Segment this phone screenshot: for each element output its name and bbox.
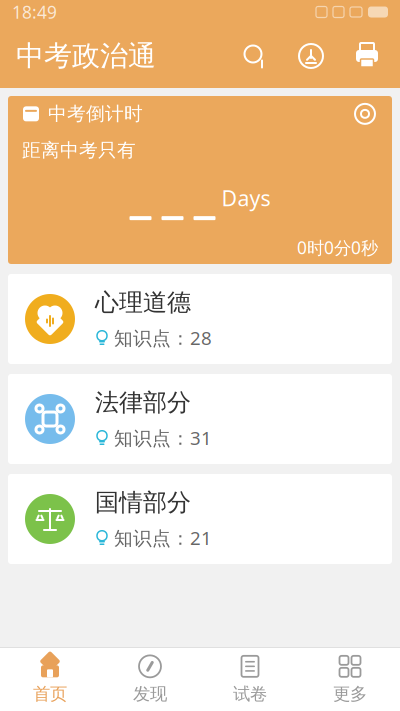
staticText: 法律部分 <box>95 388 191 417</box>
button[interactable]: 发现 <box>100 647 200 711</box>
button[interactable]: 心理道德 <box>8 274 392 364</box>
staticText: 试卷 <box>233 683 267 705</box>
staticText: 更多 <box>333 683 367 705</box>
staticText: Days <box>221 184 270 212</box>
staticText: 知识点：21 <box>114 525 212 550</box>
staticText: 距离中考只有 <box>22 139 136 162</box>
staticText: 知识点：31 <box>114 425 212 450</box>
button[interactable]: 搜索 <box>238 39 272 73</box>
staticText: 国情部分 <box>95 488 191 517</box>
button[interactable]: 国情部分 <box>8 474 392 564</box>
staticText: 18:49 <box>12 0 57 23</box>
button[interactable]: 试卷 <box>200 647 300 711</box>
button[interactable]: 下载 <box>294 39 328 73</box>
button[interactable]: 更多 <box>300 647 400 711</box>
staticText: 0时0分0秒 <box>297 236 378 259</box>
staticText: 中考倒计时 <box>48 102 143 125</box>
button[interactable]: 首页 <box>0 647 100 711</box>
staticText: 心理道德 <box>95 288 191 317</box>
staticText: 发现 <box>133 683 167 705</box>
button[interactable]: 打印 <box>350 39 384 73</box>
button[interactable]: 法律部分 <box>8 374 392 464</box>
button[interactable]: 设置 <box>352 101 378 127</box>
staticText: 首页 <box>33 683 67 705</box>
staticText: 知识点：28 <box>114 325 212 350</box>
staticText: 中考政治通 <box>16 39 156 73</box>
